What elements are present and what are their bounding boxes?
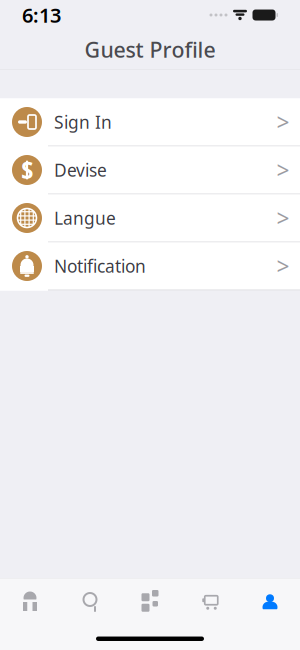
button[interactable]: Categories [120,578,180,626]
staticText: Guest Profile [84,35,215,64]
button[interactable]: Cart [180,578,240,626]
staticText: S [21,155,33,185]
staticText: Sign In [54,110,112,133]
staticText: > [276,107,289,137]
button[interactable]: Notification [0,242,300,289]
staticText: > [276,203,289,233]
staticText: > [276,251,289,281]
button[interactable]: Sign In [0,98,300,145]
button[interactable]: Langue [0,194,300,241]
button[interactable]: Home [0,578,60,626]
button[interactable]: Profile [240,578,300,626]
staticText: > [276,155,289,185]
staticText: Langue [54,206,116,229]
button[interactable]: S [0,146,300,193]
button[interactable]: Search [60,578,120,626]
staticText: Devise [54,158,107,181]
staticText: Notification [54,254,146,277]
staticText: 6:13 [22,2,61,28]
